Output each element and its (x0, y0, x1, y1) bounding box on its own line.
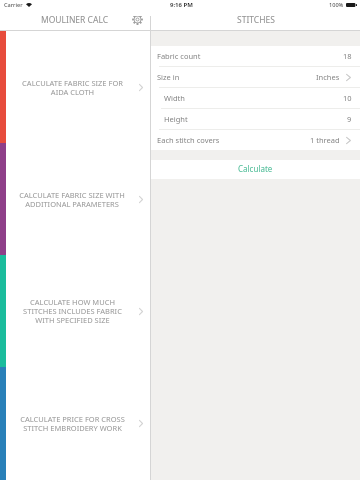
staticText: 1 thread (310, 135, 340, 145)
button[interactable]: Settings (130, 12, 145, 27)
staticText: 9:16 PM (170, 1, 193, 9)
staticText: CALCULATE PRICE FOR CROSS STITCH EMBROID… (20, 414, 125, 433)
staticText: CALCULATE HOW MUCH STITCHES INCLUDES FAB… (23, 297, 122, 325)
button[interactable]: Width (151, 88, 360, 108)
staticText: Calculate (238, 163, 273, 174)
button[interactable]: Size in (151, 67, 360, 87)
staticText: CALCULATE FABRIC SIZE FOR AIDA CLOTH (22, 78, 123, 97)
button[interactable]: Calculate (151, 160, 360, 179)
staticText: Inches (316, 72, 340, 82)
button[interactable]: CALCULATE PRICE FOR CROSS STITCH EMBROID… (0, 367, 150, 480)
staticText: Size in (157, 72, 180, 82)
staticText: 100% (329, 1, 344, 9)
staticText: Fabric count (157, 51, 201, 61)
staticText: 9 (347, 114, 352, 124)
button[interactable]: CALCULATE FABRIC SIZE FOR AIDA CLOTH (0, 31, 150, 143)
button[interactable]: Each stitch covers (151, 130, 360, 150)
button[interactable]: CALCULATE HOW MUCH STITCHES INCLUDES FAB… (0, 255, 150, 367)
staticText: Width (164, 93, 185, 103)
button[interactable]: CALCULATE FABRIC SIZE WITH ADDITIONAL PA… (0, 143, 150, 255)
staticText: CALCULATE FABRIC SIZE WITH ADDITIONAL PA… (19, 190, 125, 209)
staticText: Height (164, 114, 188, 124)
staticText: MOULINER CALC (41, 14, 109, 26)
button[interactable]: Fabric count (151, 46, 360, 66)
staticText: Carrier (4, 1, 23, 9)
staticText: 18 (343, 51, 352, 61)
staticText: Each stitch covers (157, 135, 220, 145)
button[interactable]: Height (151, 109, 360, 129)
staticText: STITCHES (237, 14, 275, 26)
staticText: 10 (343, 93, 352, 103)
